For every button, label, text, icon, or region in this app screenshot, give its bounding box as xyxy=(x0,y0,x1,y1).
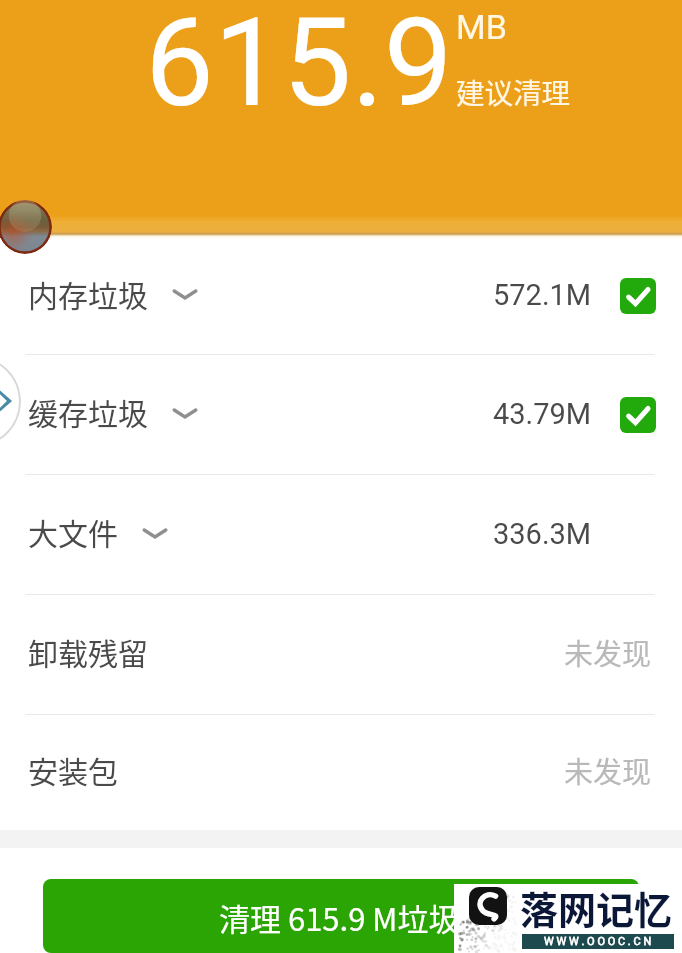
button[interactable]: 大文件 xyxy=(0,475,682,594)
staticText: 清理 615.9 M垃圾 xyxy=(219,895,460,940)
button[interactable]: 内存垃圾 xyxy=(0,238,682,354)
button[interactable]: 缓存垃圾 xyxy=(0,355,682,474)
button[interactable]: Selected 内存垃圾 xyxy=(620,278,656,314)
button[interactable]: 安装包 xyxy=(0,715,682,830)
button[interactable]: Expand 大文件 xyxy=(140,518,170,548)
staticText: 大文件 xyxy=(28,510,118,553)
button[interactable]: Expand side panel xyxy=(0,356,21,447)
staticText: 建议清理 xyxy=(456,71,571,112)
staticText: 内存垃圾 xyxy=(28,272,148,315)
staticText: 未发现 xyxy=(564,749,652,791)
button[interactable]: 清理 615.9 M垃圾 xyxy=(43,879,639,953)
staticText: 336.3M xyxy=(493,517,592,551)
staticText: W W W . O O O C . C N xyxy=(544,935,652,948)
button[interactable]: 卸载残留 xyxy=(0,595,682,714)
button[interactable]: Selected 缓存垃圾 xyxy=(620,397,656,433)
staticText: 落网记忆 xyxy=(520,880,673,935)
staticText: 卸载残留 xyxy=(28,630,148,673)
button[interactable]: Floating assistant ball xyxy=(0,200,52,254)
staticText: 未发现 xyxy=(564,631,652,673)
staticText: 43.79M xyxy=(493,397,592,431)
staticText: 572.1M xyxy=(493,278,592,312)
staticText: MB xyxy=(456,7,507,47)
staticText: 缓存垃圾 xyxy=(28,390,148,433)
staticText: 615.9 xyxy=(145,0,453,135)
button[interactable]: Expand 内存垃圾 xyxy=(170,279,200,309)
staticText: 安装包 xyxy=(28,748,118,791)
button[interactable]: Expand 缓存垃圾 xyxy=(170,398,200,428)
